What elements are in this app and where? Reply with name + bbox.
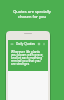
staticText: Wherever life plants you bloom with grac… [11, 50, 45, 66]
staticText: Daily Quotes [16, 42, 36, 46]
button[interactable]: Menu [10, 42, 14, 46]
staticText: Quotes are specially [13, 9, 51, 14]
button[interactable]: More options [42, 42, 46, 46]
staticText: chosen for you [18, 14, 46, 19]
button[interactable]: Favorite [37, 42, 41, 46]
